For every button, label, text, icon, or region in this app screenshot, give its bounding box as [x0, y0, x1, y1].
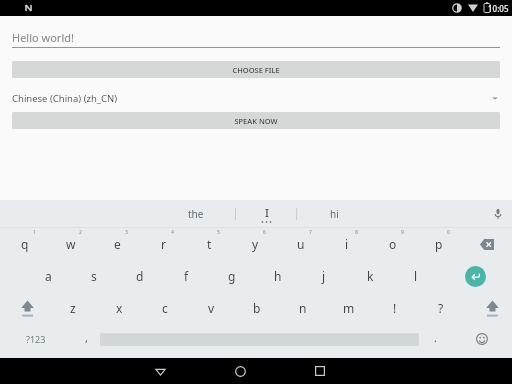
staticText: Chinese (China) (zh_CN) — [12, 92, 118, 105]
staticText: q — [21, 236, 29, 252]
staticText: . — [434, 330, 437, 345]
button[interactable]: Emoji — [452, 324, 512, 354]
button[interactable]: l — [393, 260, 439, 292]
button[interactable]: , — [72, 324, 100, 354]
staticText: k — [367, 268, 374, 284]
staticText: u — [297, 236, 305, 252]
staticText: ! — [393, 300, 397, 316]
staticText: n — [299, 300, 307, 316]
staticText: y — [252, 236, 259, 252]
staticText: v — [208, 300, 215, 316]
staticText: w — [66, 236, 76, 252]
staticText: h — [274, 268, 282, 284]
button[interactable]: the — [157, 200, 235, 227]
staticText: Hello world! — [12, 30, 74, 45]
staticText: s — [91, 268, 97, 284]
staticText: i — [345, 236, 349, 252]
button[interactable]: I — [236, 200, 296, 227]
button[interactable]: v — [188, 292, 234, 324]
staticText: r — [161, 236, 166, 252]
staticText: z — [70, 300, 76, 316]
button[interactable]: ?123 — [0, 324, 72, 354]
button[interactable]: p — [416, 228, 462, 260]
staticText: g — [228, 268, 236, 284]
button[interactable]: Home — [220, 358, 260, 384]
staticText: CHOOSE FILE — [232, 65, 280, 75]
button[interactable]: j — [301, 260, 347, 292]
button[interactable]: u — [278, 228, 324, 260]
staticText: t — [207, 236, 212, 252]
button[interactable]: f — [163, 260, 209, 292]
button[interactable]: q — [2, 228, 48, 260]
staticText: 10:05 — [488, 3, 509, 14]
button[interactable]: g — [209, 260, 255, 292]
button[interactable]: ! — [372, 292, 418, 324]
staticText: b — [253, 300, 261, 316]
staticText: 8 — [355, 229, 358, 236]
button[interactable]: a — [25, 260, 71, 292]
staticText: 6 — [263, 229, 266, 236]
staticText: 1 — [33, 229, 36, 236]
staticText: c — [162, 300, 168, 316]
staticText: 0 — [447, 229, 450, 236]
button[interactable]: k — [347, 260, 393, 292]
staticText: 7 — [309, 229, 312, 236]
staticText: p — [435, 236, 443, 252]
button[interactable]: t — [186, 228, 232, 260]
staticText: ? — [438, 300, 444, 316]
staticText: e — [114, 236, 121, 252]
button[interactable]: SPEAK NOW — [12, 112, 500, 129]
staticText: I — [265, 205, 269, 220]
staticText: 5 — [217, 229, 220, 236]
button[interactable]: ? — [418, 292, 464, 324]
button[interactable]: i — [324, 228, 370, 260]
button[interactable]: m — [326, 292, 372, 324]
staticText: f — [184, 268, 189, 284]
button[interactable]: y — [232, 228, 278, 260]
button[interactable]: Back — [140, 358, 180, 384]
staticText: 4 — [171, 229, 174, 236]
staticText: d — [136, 268, 144, 284]
button[interactable]: d — [117, 260, 163, 292]
button[interactable]: n — [280, 292, 326, 324]
button[interactable]: Shift right — [472, 292, 512, 324]
staticText: ?123 — [26, 333, 46, 345]
staticText: , — [85, 330, 88, 345]
button[interactable]: w — [48, 228, 94, 260]
staticText: m — [343, 300, 355, 316]
button[interactable]: . — [419, 324, 452, 354]
button[interactable]: z — [50, 292, 96, 324]
button[interactable]: Recent apps — [300, 358, 340, 384]
button[interactable]: Enter — [439, 260, 512, 292]
button[interactable]: r — [140, 228, 186, 260]
button[interactable]: c — [142, 292, 188, 324]
staticText: x — [116, 300, 123, 316]
button[interactable]: o — [370, 228, 416, 260]
button[interactable]: e — [94, 228, 140, 260]
button[interactable]: h — [255, 260, 301, 292]
staticText: 3 — [125, 229, 128, 236]
button[interactable]: Shift — [5, 292, 50, 324]
staticText: hi — [330, 207, 339, 221]
button[interactable]: b — [234, 292, 280, 324]
staticText: a — [45, 268, 52, 284]
button[interactable]: x — [96, 292, 142, 324]
button[interactable]: CHOOSE FILE — [12, 61, 500, 78]
staticText: l — [414, 268, 418, 284]
staticText: the — [188, 207, 204, 221]
button[interactable]: Hello world! — [12, 27, 500, 48]
staticText: SPEAK NOW — [234, 116, 278, 126]
button[interactable]: Backspace — [462, 228, 512, 260]
button[interactable]: Voice input — [484, 200, 512, 227]
button[interactable]: Chinese (China) (zh_CN) — [12, 88, 500, 108]
button[interactable]: hi — [297, 200, 372, 227]
staticText: 9 — [401, 229, 404, 236]
staticText: 2 — [79, 229, 82, 236]
button[interactable]: s — [71, 260, 117, 292]
staticText: j — [322, 268, 326, 284]
staticText: o — [389, 236, 397, 252]
